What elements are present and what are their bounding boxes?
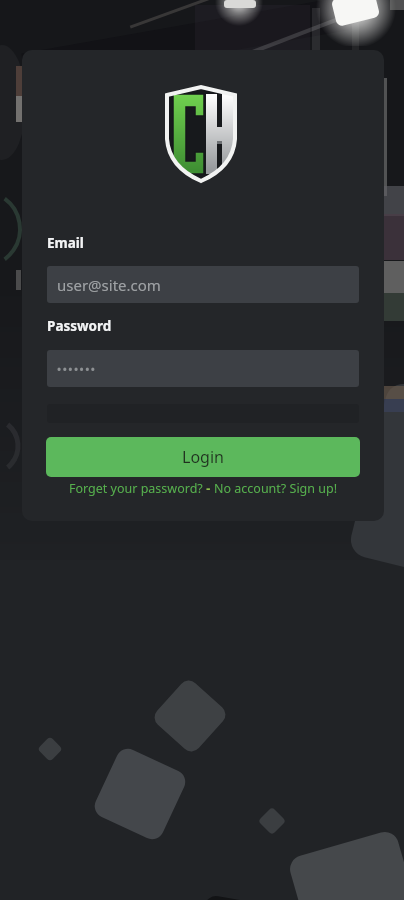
staticText: Login xyxy=(182,446,224,468)
button[interactable]: Login xyxy=(46,437,360,477)
button[interactable]: user@site.com xyxy=(47,266,359,303)
button[interactable]: No account? Sign up! xyxy=(214,480,338,497)
staticText: Password xyxy=(47,317,112,335)
button[interactable]: Forget your password? xyxy=(69,480,203,497)
staticText: user@site.com xyxy=(57,275,161,295)
staticText: No account? Sign up! xyxy=(214,480,338,497)
staticText: Forget your password? xyxy=(69,480,203,497)
button[interactable]: ••••••• xyxy=(47,350,359,387)
staticText: ••••••• xyxy=(57,361,97,376)
staticText: Email xyxy=(47,234,84,252)
staticText: - xyxy=(203,480,214,497)
